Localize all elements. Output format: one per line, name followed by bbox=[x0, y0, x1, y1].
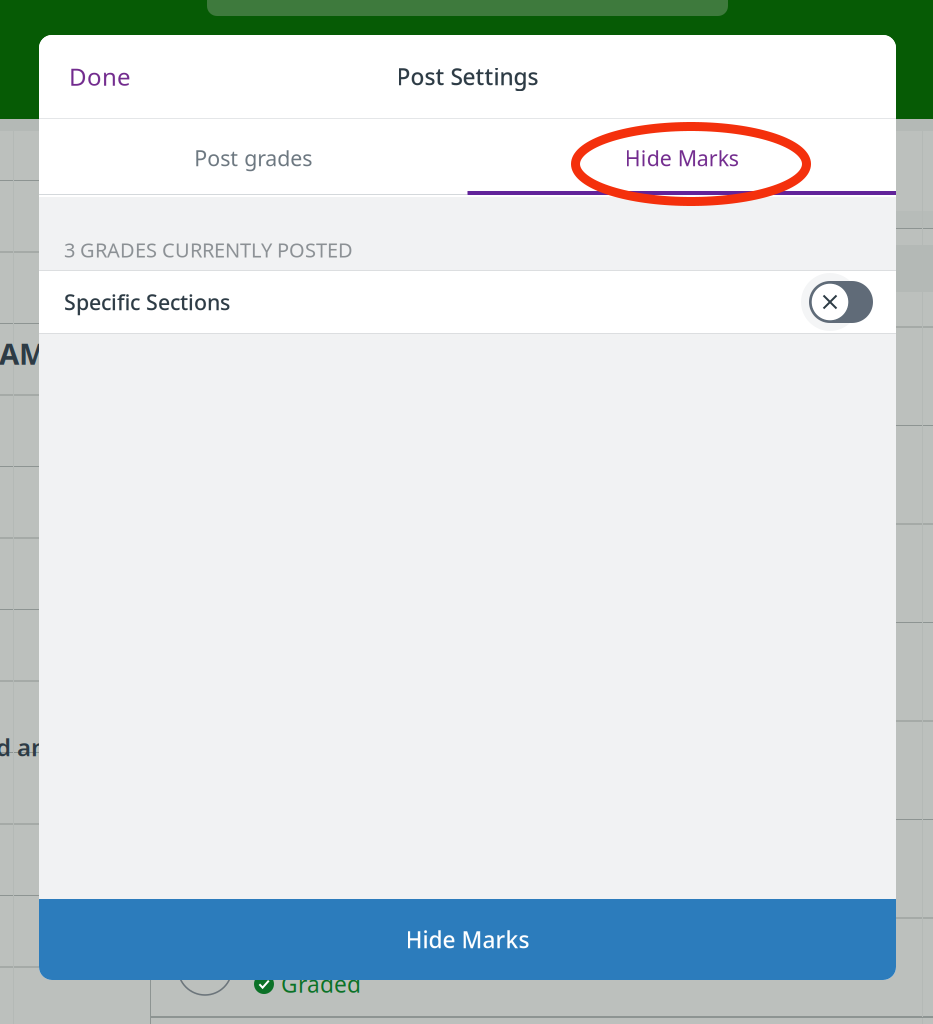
staticText: Done bbox=[69, 61, 131, 92]
staticText: Hide Marks bbox=[625, 144, 739, 172]
button[interactable]: Hide Marks bbox=[39, 899, 896, 980]
staticText: Post Settings bbox=[396, 61, 538, 91]
button[interactable]: Specific Sections, off bbox=[809, 281, 873, 323]
staticText: Brand and bbox=[0, 731, 61, 763]
staticText: Hide Marks bbox=[405, 924, 529, 954]
button[interactable]: Post grades bbox=[39, 121, 467, 195]
button[interactable]: Hide Marks bbox=[467, 121, 896, 195]
staticText: STUDENT NAME bbox=[0, 334, 63, 373]
staticText: Post grades bbox=[194, 144, 312, 172]
button[interactable]: Done bbox=[39, 43, 161, 110]
staticText: 3 GRADES CURRENTLY POSTED bbox=[64, 236, 353, 263]
staticText: Specific Sections bbox=[64, 288, 230, 316]
staticText: Graded bbox=[281, 969, 361, 999]
